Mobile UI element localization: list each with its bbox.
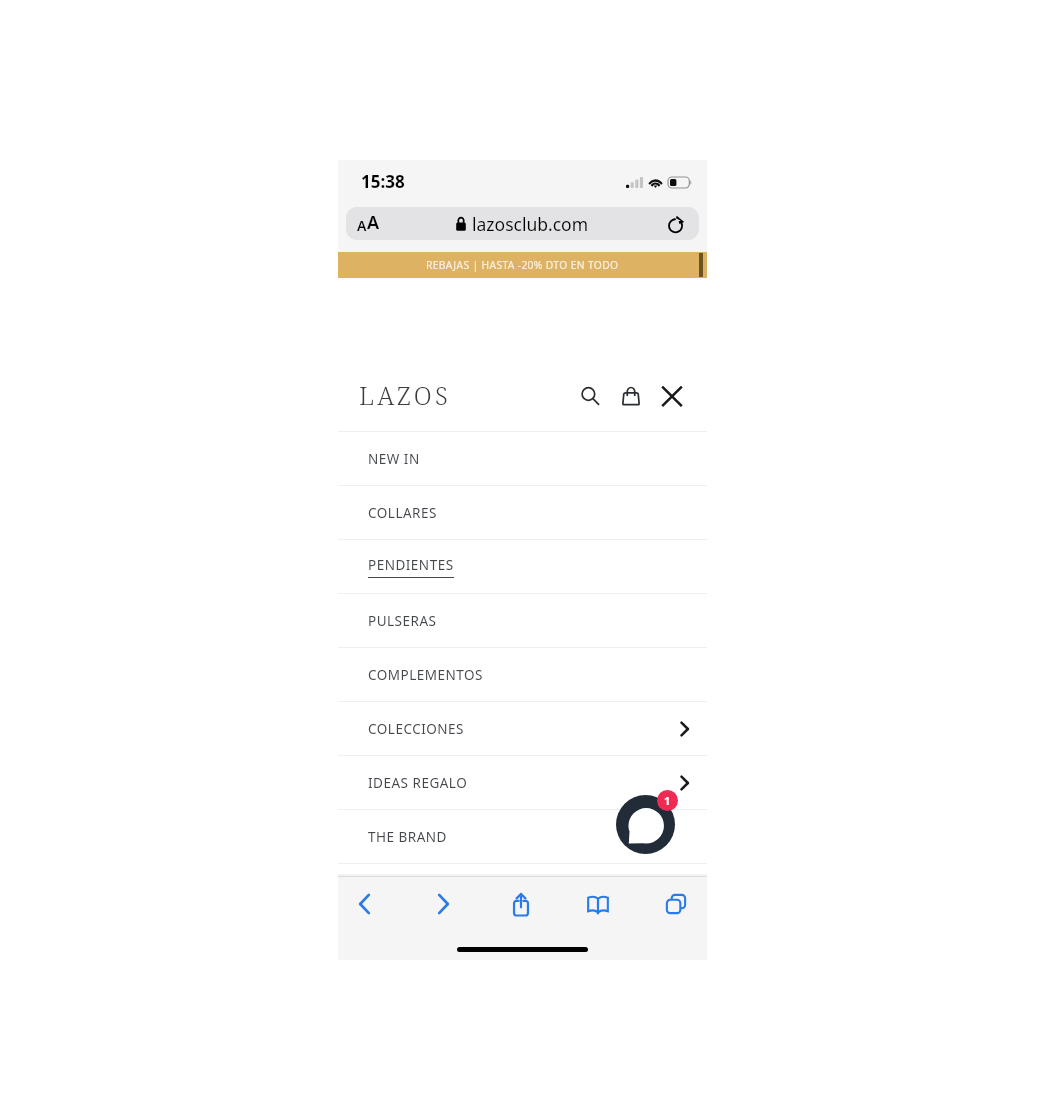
button[interactable]: Expand COLECCIONES: [673, 717, 697, 741]
button[interactable]: Search: [575, 381, 605, 411]
staticText: PULSERAS: [368, 612, 437, 630]
button[interactable]: Close menu: [657, 381, 687, 411]
staticText: A: [367, 210, 380, 235]
staticText: NEW IN: [368, 450, 420, 468]
button[interactable]: COLLARES: [338, 486, 707, 539]
staticText: 15:38: [361, 170, 405, 193]
button[interactable]: Back: [342, 881, 388, 927]
button[interactable]: NEW IN: [338, 432, 707, 485]
button[interactable]: Expand IDEAS REGALO: [673, 771, 697, 795]
button[interactable]: Bookmarks: [575, 881, 621, 927]
button[interactable]: IDEAS REGALO: [338, 756, 707, 809]
button[interactable]: Forward: [420, 881, 466, 927]
staticText: PENDIENTES: [368, 556, 454, 574]
button[interactable]: Share: [498, 881, 544, 927]
staticText: 1: [664, 793, 671, 808]
staticText: REBAJAS | HASTA -20% DTO EN TODO: [426, 258, 619, 272]
staticText: LAZOS: [359, 378, 451, 412]
button[interactable]: PULSERAS: [338, 594, 707, 647]
staticText: COMPLEMENTOS: [368, 666, 483, 684]
staticText: THE BRAND: [368, 828, 447, 846]
button[interactable]: Tabs: [653, 881, 699, 927]
staticText: COLLARES: [368, 504, 437, 522]
button[interactable]: COMPLEMENTOS: [338, 648, 707, 701]
button[interactable]: Open chat: [616, 795, 675, 854]
staticText: A: [357, 216, 367, 235]
button[interactable]: Reload page: [667, 214, 686, 233]
button[interactable]: COLECCIONES: [338, 702, 707, 755]
button[interactable]: THE BRAND: [338, 810, 707, 863]
staticText: lazosclub.com: [472, 212, 589, 236]
staticText: COLECCIONES: [368, 720, 464, 738]
button[interactable]: A: [346, 207, 699, 240]
staticText: IDEAS REGALO: [368, 774, 468, 792]
button[interactable]: Shopping bag: [616, 381, 646, 411]
button[interactable]: PENDIENTES: [338, 540, 707, 593]
